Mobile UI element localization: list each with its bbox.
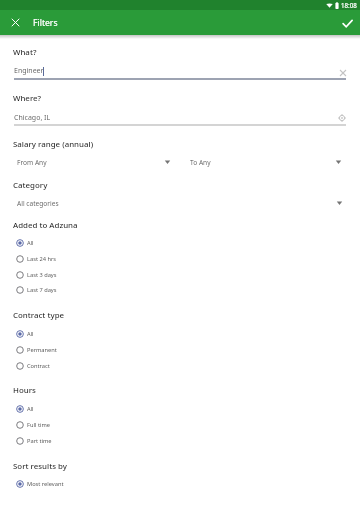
staticText: What? [13,47,37,58]
staticText: 18:08 [341,1,357,9]
button[interactable]: Apply filters [335,11,359,35]
staticText: Last 24 hrs [27,255,57,263]
button[interactable]: Last 7 days [10,282,120,298]
staticText: Sort results by [13,461,68,472]
staticText: Part time [27,437,52,445]
staticText: Engineer [14,66,44,76]
staticText: Full time [27,421,50,429]
staticText: Last 7 days [27,286,57,294]
staticText: Contract [27,362,50,370]
button[interactable]: Last 3 days [10,267,120,283]
staticText: Contract type [13,310,65,321]
button[interactable]: All categories [8,195,348,211]
staticText: Category [13,180,48,191]
button[interactable]: Permanent [10,342,120,358]
staticText: Last 3 days [27,271,57,279]
button[interactable]: Full time [10,417,120,433]
button[interactable]: Chicago, IL [10,108,350,128]
staticText: From Any [17,158,47,167]
staticText: Filters [33,17,58,29]
button[interactable]: All [10,326,120,342]
button[interactable]: To Any [181,154,347,170]
staticText: All categories [17,199,59,208]
staticText: Hours [13,385,36,396]
staticText: All [27,330,34,338]
button[interactable]: From Any [8,154,176,170]
button[interactable]: Part time [10,433,120,449]
staticText: To Any [190,158,211,167]
button[interactable]: Close [3,10,27,34]
button[interactable]: Contract [10,358,120,374]
staticText: All [27,405,34,413]
staticText: Added to Adzuna [13,220,78,231]
button[interactable]: Last 24 hrs [10,251,120,267]
button[interactable]: Most relevant [10,476,120,492]
staticText: Where? [13,93,42,104]
staticText: All [27,239,34,247]
staticText: Chicago, IL [14,113,51,123]
staticText: Most relevant [27,480,64,488]
button[interactable]: All [10,401,120,417]
button[interactable]: Clear search [336,66,350,80]
staticText: Salary range (annual) [13,139,94,150]
button[interactable]: Use current location [335,111,349,125]
button[interactable]: Engineer [10,62,350,82]
button[interactable]: All [10,235,120,251]
staticText: Permanent [27,346,57,354]
